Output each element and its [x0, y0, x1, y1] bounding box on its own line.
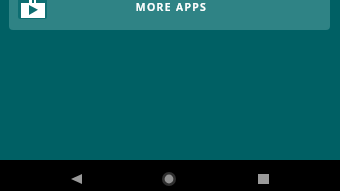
button[interactable]: Back: [56, 166, 96, 191]
button[interactable]: Recent apps: [243, 166, 283, 191]
button[interactable]: Home: [149, 166, 189, 191]
button[interactable]: MORE APPS: [9, 0, 330, 30]
staticText: MORE APPS: [11, 0, 330, 14]
